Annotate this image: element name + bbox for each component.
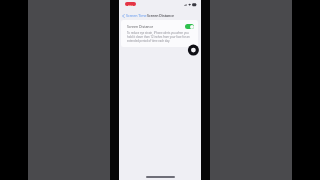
button[interactable]: Back xyxy=(122,13,147,18)
staticText: To reduce eye strain, iPhone alerts you … xyxy=(127,31,194,43)
staticText: Screen Time xyxy=(126,13,147,18)
other: Back xyxy=(122,14,125,18)
button[interactable]: Screen Distance xyxy=(127,20,194,32)
staticText: Screen Distance xyxy=(127,24,154,29)
staticText: Screen Distance xyxy=(147,13,175,18)
staticText: 9:41 xyxy=(128,3,133,6)
